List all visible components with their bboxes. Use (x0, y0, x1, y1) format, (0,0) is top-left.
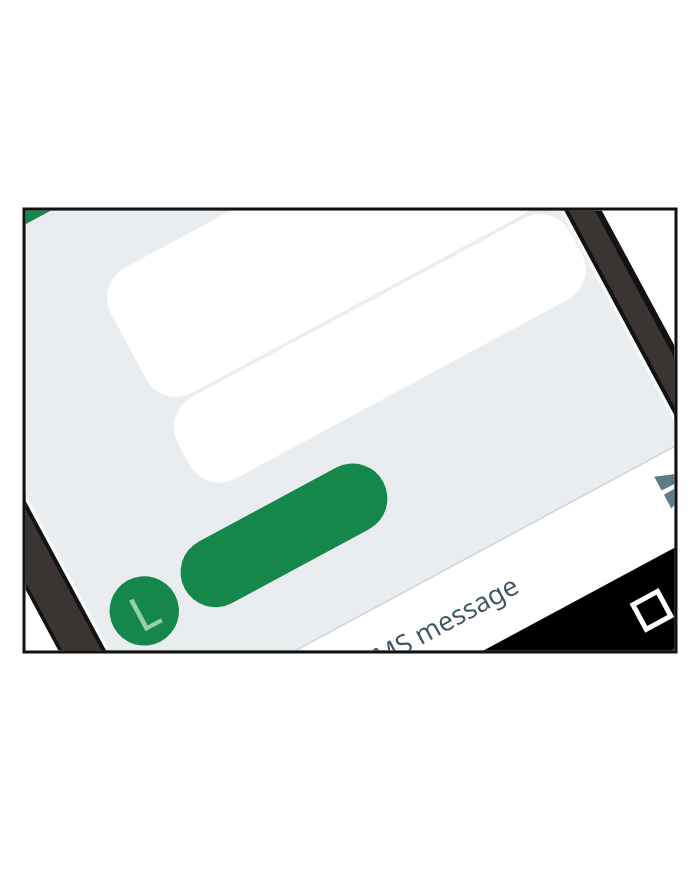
button[interactable]: Messaging conversation screenshot (0, 0, 700, 893)
